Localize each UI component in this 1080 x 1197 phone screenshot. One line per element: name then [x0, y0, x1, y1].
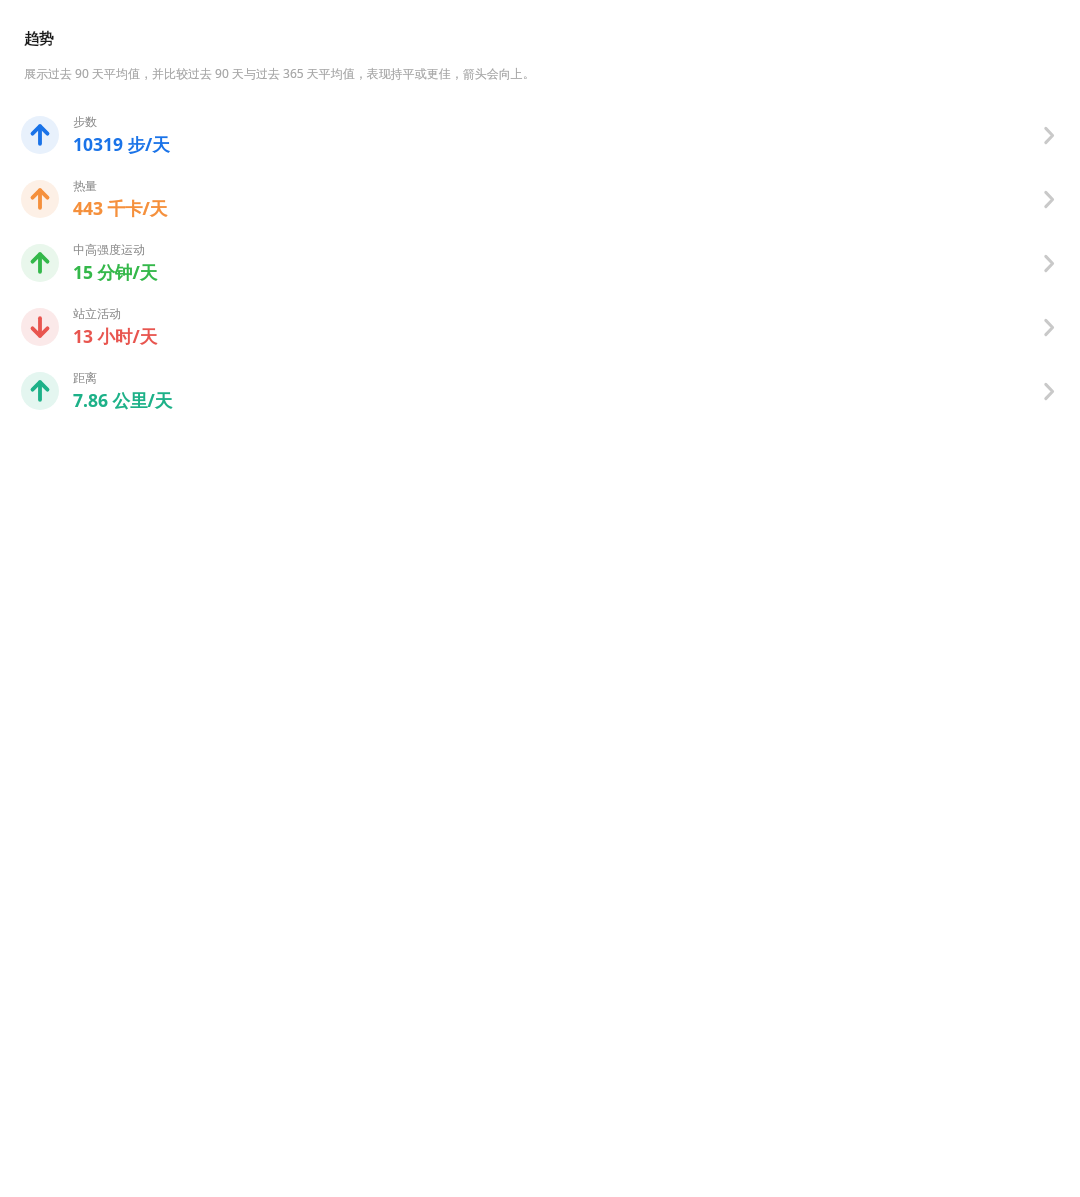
- other: 查看站立活动详情: [1038, 309, 1060, 345]
- staticText: 15 分钟/天: [73, 260, 158, 284]
- staticText: 443 千卡/天: [73, 196, 168, 220]
- button[interactable]: 步数: [0, 103, 1080, 167]
- staticText: 展示过去 90 天平均值，并比较过去 90 天与过去 365 天平均值，表现持平…: [24, 65, 535, 81]
- staticText: 趋势: [24, 30, 54, 49]
- button[interactable]: 距离: [0, 359, 1080, 423]
- other: 查看中高强度运动详情: [1038, 245, 1060, 281]
- staticText: 热量: [73, 178, 97, 193]
- button[interactable]: 中高强度运动: [0, 231, 1080, 295]
- other: 查看热量详情: [1038, 181, 1060, 217]
- staticText: 步数: [73, 114, 97, 129]
- button[interactable]: 热量: [0, 167, 1080, 231]
- staticText: 距离: [73, 370, 97, 385]
- staticText: 站立活动: [73, 306, 121, 321]
- other: 查看距离详情: [1038, 373, 1060, 409]
- staticText: 7.86 公里/天: [73, 388, 173, 412]
- other: 查看步数详情: [1038, 117, 1060, 153]
- staticText: 13 小时/天: [73, 324, 158, 348]
- button[interactable]: 站立活动: [0, 295, 1080, 359]
- staticText: 10319 步/天: [73, 132, 170, 156]
- staticText: 中高强度运动: [73, 242, 145, 257]
